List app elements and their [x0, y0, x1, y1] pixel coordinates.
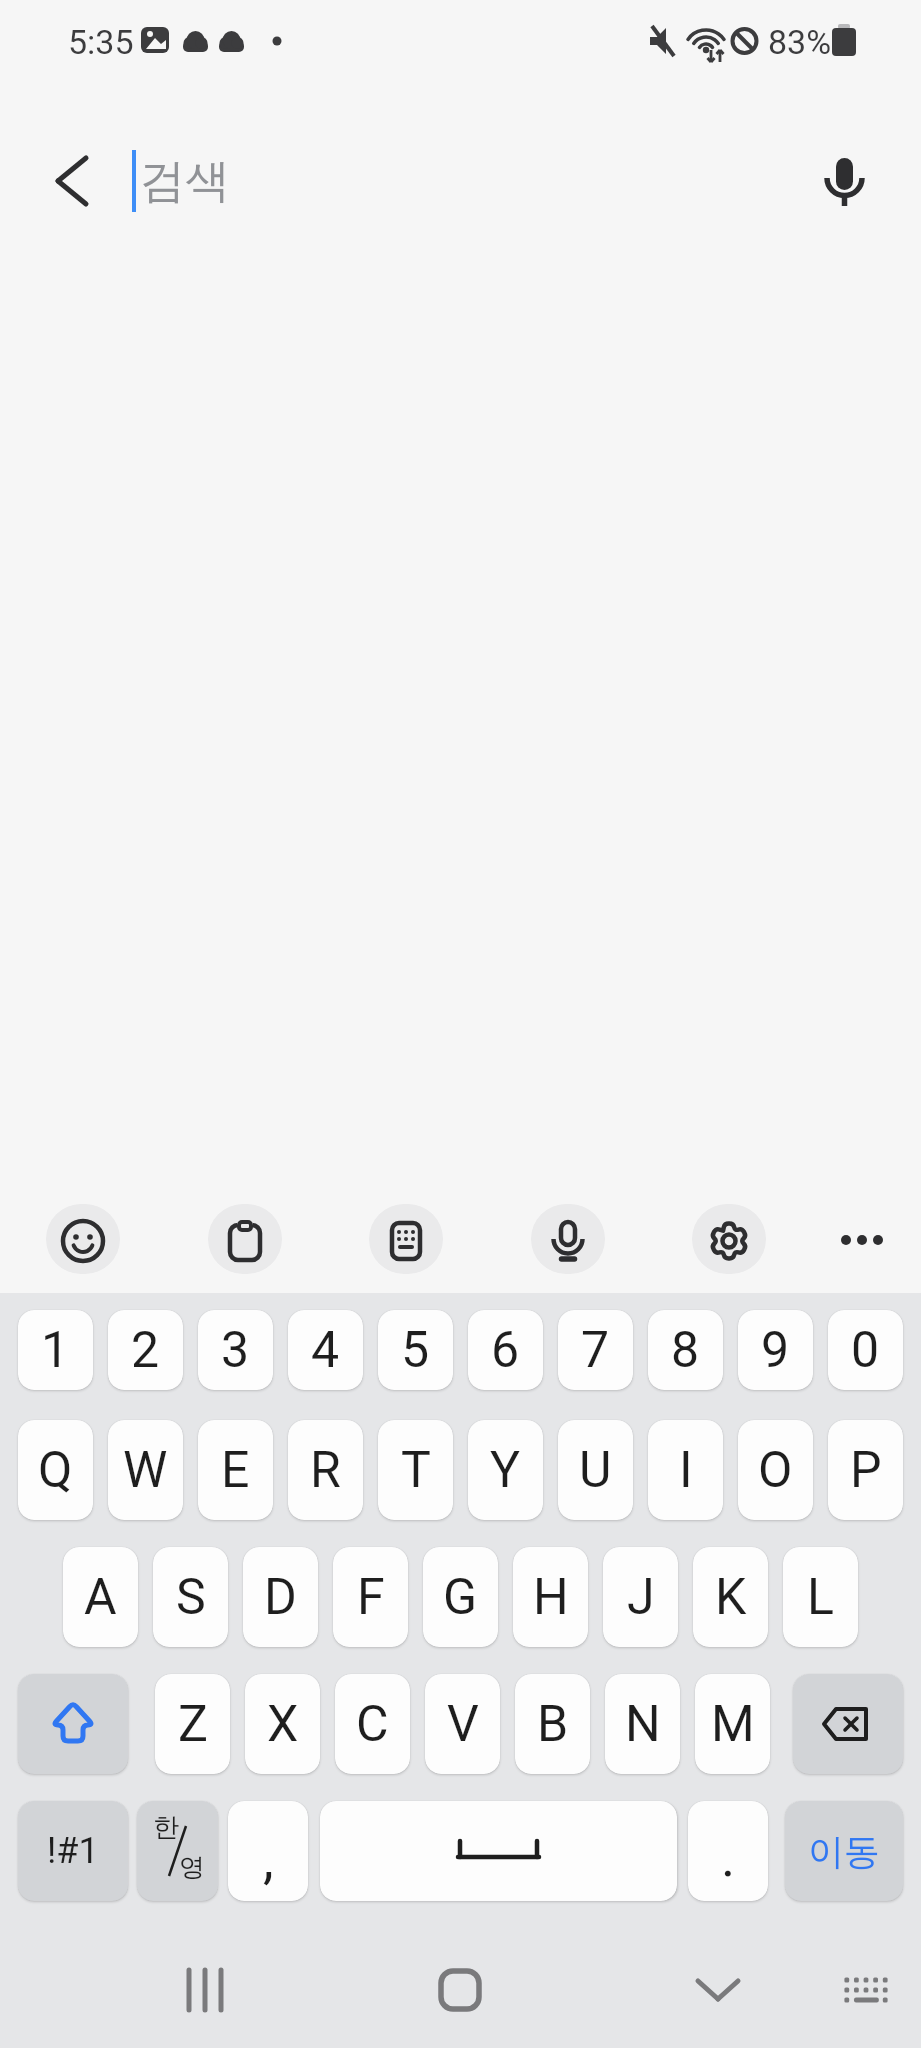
button[interactable]: A [63, 1547, 138, 1647]
staticText: B [537, 1695, 569, 1754]
staticText: . [721, 1826, 736, 1889]
staticText: Q [38, 1441, 73, 1500]
button[interactable]: V [425, 1674, 500, 1774]
staticText: 영 [179, 1851, 205, 1884]
staticText: Y [490, 1441, 521, 1500]
button[interactable]: B [515, 1674, 590, 1774]
staticText: 83% [768, 22, 832, 62]
button[interactable]: 0 [828, 1310, 903, 1390]
staticText: E [221, 1441, 250, 1500]
button[interactable] [0, 1948, 231, 2048]
button[interactable]: 4 [288, 1310, 363, 1390]
button[interactable]: G [423, 1547, 498, 1647]
button[interactable]: L [783, 1547, 858, 1647]
staticText: R [310, 1441, 341, 1500]
button[interactable]: X [245, 1674, 320, 1774]
button[interactable]: 5 [378, 1310, 453, 1390]
staticText: 4 [311, 1321, 340, 1380]
button[interactable] [18, 1674, 128, 1774]
button[interactable]: F [333, 1547, 408, 1647]
staticText: P [850, 1441, 882, 1500]
staticText: H [533, 1568, 569, 1627]
button[interactable]: U [558, 1420, 633, 1520]
button[interactable]: I [648, 1420, 723, 1520]
button[interactable]: , [228, 1801, 308, 1901]
button[interactable]: !#1 [18, 1801, 128, 1901]
button[interactable]: T [378, 1420, 453, 1520]
button[interactable]: S [153, 1547, 228, 1647]
staticText: 3 [221, 1321, 250, 1380]
button[interactable]: C [335, 1674, 410, 1774]
button[interactable] [691, 1948, 921, 2048]
staticText: !#1 [47, 1830, 99, 1872]
staticText: W [123, 1441, 168, 1500]
button[interactable] [208, 1204, 282, 1274]
button[interactable]: H [513, 1547, 588, 1647]
staticText: S [176, 1568, 206, 1627]
button[interactable] [692, 1204, 766, 1274]
staticText: 0 [851, 1321, 880, 1380]
button[interactable]: 한 [137, 1801, 218, 1901]
button[interactable]: R [288, 1420, 363, 1520]
button[interactable]: 이동 [785, 1801, 903, 1901]
staticText: G [443, 1568, 478, 1627]
button[interactable]: 7 [558, 1310, 633, 1390]
staticText: 이동 [808, 1829, 880, 1874]
staticText: T [401, 1441, 431, 1500]
staticText: I [679, 1441, 693, 1500]
staticText: J [627, 1568, 655, 1627]
button[interactable]: Q [18, 1420, 93, 1520]
button[interactable]: W [108, 1420, 183, 1520]
button[interactable]: J [603, 1547, 678, 1647]
button[interactable] [320, 1801, 677, 1901]
staticText: 2 [131, 1321, 160, 1380]
staticText: D [264, 1568, 297, 1627]
button[interactable] [461, 1948, 691, 2048]
button[interactable]: 9 [738, 1310, 813, 1390]
button[interactable]: K [693, 1547, 768, 1647]
button[interactable] [531, 1204, 605, 1274]
staticText: C [356, 1695, 389, 1754]
button[interactable]: 8 [648, 1310, 723, 1390]
button[interactable] [231, 1948, 461, 2048]
button[interactable]: 6 [468, 1310, 543, 1390]
staticText: 5 [401, 1321, 430, 1380]
button[interactable]: P [828, 1420, 903, 1520]
button[interactable] [369, 1204, 443, 1274]
staticText: 8 [671, 1321, 700, 1380]
button[interactable]: N [605, 1674, 680, 1774]
staticText: O [758, 1441, 793, 1500]
button[interactable]: Y [468, 1420, 543, 1520]
staticText: A [84, 1568, 117, 1627]
staticText: , [263, 1828, 274, 1891]
staticText: X [267, 1695, 299, 1754]
button[interactable]: 2 [108, 1310, 183, 1390]
staticText: M [711, 1695, 755, 1754]
staticText: 한 [153, 1811, 179, 1844]
button[interactable]: Z [155, 1674, 230, 1774]
button[interactable] [793, 1674, 903, 1774]
button[interactable] [828, 1204, 896, 1272]
staticText: L [807, 1568, 834, 1627]
staticText: 검색 [140, 153, 230, 210]
button[interactable]: 3 [198, 1310, 273, 1390]
button[interactable] [46, 1204, 120, 1274]
button[interactable]: . [688, 1801, 768, 1901]
staticText: 5:35 [68, 22, 134, 62]
staticText: F [357, 1568, 385, 1627]
button[interactable]: 검색 [0, 125, 921, 235]
button[interactable]: 1 [18, 1310, 93, 1390]
button[interactable]: M [695, 1674, 770, 1774]
button[interactable]: E [198, 1420, 273, 1520]
button[interactable]: O [738, 1420, 813, 1520]
button[interactable]: D [243, 1547, 318, 1647]
staticText: U [579, 1441, 612, 1500]
staticText: V [447, 1695, 479, 1754]
staticText: K [715, 1568, 747, 1627]
staticText: 7 [581, 1321, 610, 1380]
staticText: 1 [41, 1321, 70, 1380]
staticText: 9 [761, 1321, 790, 1380]
staticText: 6 [491, 1321, 520, 1380]
staticText: Z [178, 1695, 208, 1754]
staticText: N [625, 1695, 661, 1754]
